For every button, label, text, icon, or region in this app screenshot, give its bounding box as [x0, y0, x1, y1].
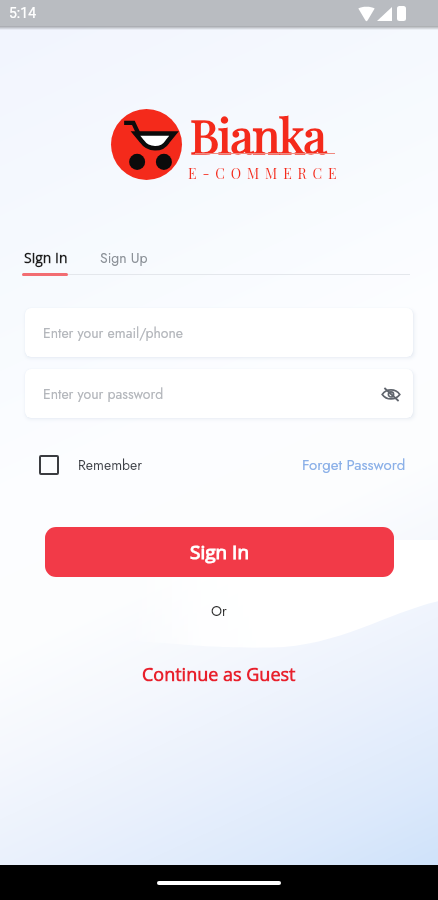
button[interactable]: Forget Password	[302, 454, 406, 476]
button[interactable]: Remember	[39, 455, 143, 475]
staticText: Enter your password	[43, 384, 164, 404]
staticText: Bianka	[190, 103, 326, 166]
staticText: Enter your email/phone	[43, 323, 184, 343]
staticText: Remember	[78, 455, 143, 475]
other: Bianka logo	[111, 109, 182, 180]
staticText: Sign Up	[100, 248, 148, 268]
staticText: E-COMMERCE	[188, 164, 343, 183]
staticText: Sign In	[190, 539, 250, 565]
button[interactable]: Enter your email/phone	[25, 308, 413, 357]
staticText: Or	[211, 601, 227, 621]
staticText: Sign In	[24, 248, 68, 267]
button[interactable]: Continue as Guest	[0, 662, 438, 687]
button[interactable]: Sign Up	[100, 248, 148, 268]
button[interactable]: Sign In	[24, 248, 68, 267]
button[interactable]: Sign In	[45, 527, 394, 577]
staticText: Forget Password	[302, 454, 406, 476]
staticText: Continue as Guest	[142, 662, 296, 687]
button[interactable]: Enter your password	[25, 369, 413, 418]
staticText: 5:14	[9, 5, 36, 21]
other: Show password	[381, 384, 401, 404]
